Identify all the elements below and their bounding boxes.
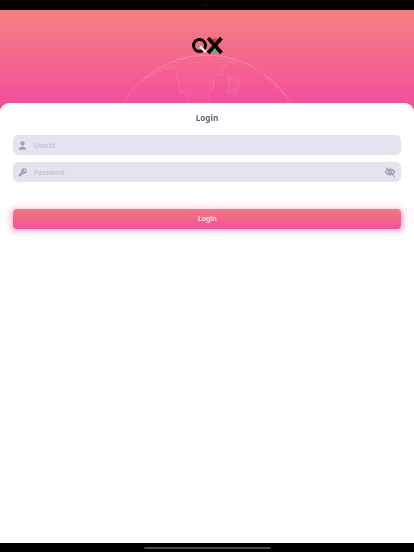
button[interactable]: Password bbox=[13, 162, 401, 182]
button[interactable]: Toggle password visibility bbox=[380, 162, 400, 182]
staticText: Login bbox=[0, 112, 414, 123]
staticText: Login bbox=[198, 214, 217, 224]
button[interactable]: UserId bbox=[13, 135, 401, 155]
staticText: Password bbox=[34, 168, 65, 177]
button[interactable]: Login bbox=[13, 209, 401, 229]
staticText: UserId bbox=[34, 141, 56, 150]
